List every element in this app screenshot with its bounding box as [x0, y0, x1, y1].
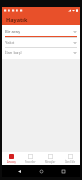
staticText: Yakıt [5, 40, 73, 46]
other: Open dropdown [73, 52, 77, 54]
other: Open dropdown [73, 31, 77, 33]
button[interactable]: Back [14, 166, 24, 176]
button[interactable]: İlan başl [2, 48, 80, 57]
button[interactable]: Mesajlar [40, 152, 60, 165]
button[interactable]: Yakıt [2, 38, 80, 47]
staticText: Favoriler [25, 160, 36, 164]
button[interactable]: Bir araş [2, 27, 80, 37]
staticText: Anasay [7, 160, 16, 164]
button[interactable]: Home [36, 166, 46, 176]
staticText: Hayatık [6, 16, 28, 23]
staticText: Bir araş [5, 29, 73, 35]
button[interactable]: Favoriler [21, 152, 40, 165]
button[interactable]: İlan Ekle [60, 152, 80, 165]
staticText: İlan Ekle [65, 160, 76, 164]
button[interactable]: Anasay [2, 152, 21, 165]
staticText: Mesajlar [45, 160, 56, 164]
button[interactable]: Recent apps [58, 166, 68, 176]
other: Open dropdown [73, 42, 77, 44]
staticText: İlan başl [5, 50, 73, 56]
